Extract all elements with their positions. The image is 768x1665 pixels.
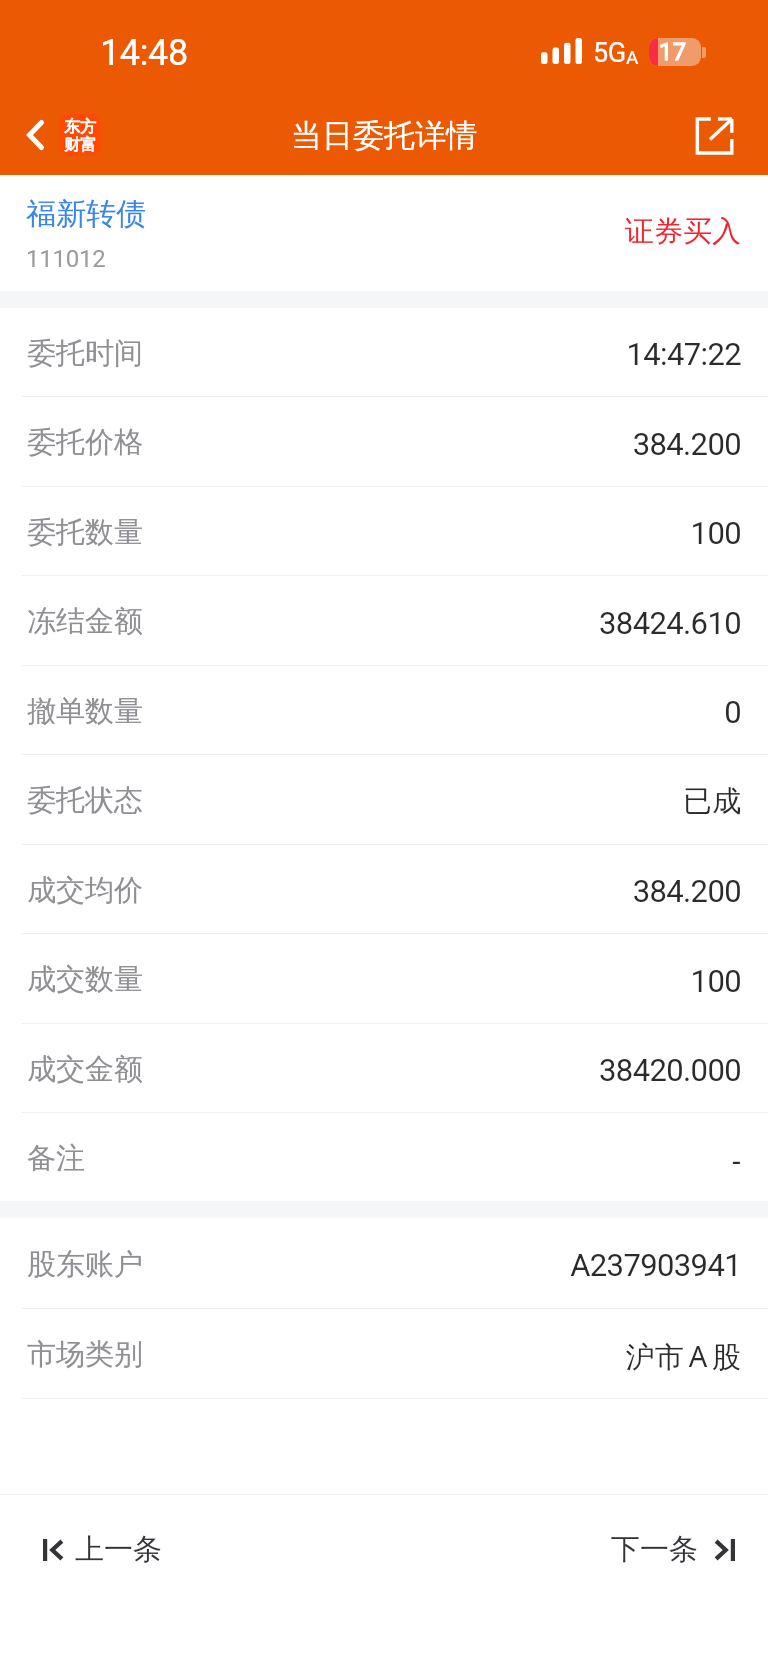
staticText: 沪市 A 股 xyxy=(625,1336,741,1376)
button[interactable]: 成交数量 xyxy=(0,934,768,1024)
staticText: 备注 xyxy=(27,1140,85,1177)
staticText: 0 xyxy=(724,694,741,730)
staticText: 股东账户 xyxy=(27,1246,143,1283)
staticText: 委托价格 xyxy=(27,424,143,461)
button[interactable]: 成交金额 xyxy=(0,1024,768,1113)
button[interactable]: 委托价格 xyxy=(0,397,768,487)
button[interactable]: 上一条 xyxy=(33,1523,171,1578)
staticText: 384.200 xyxy=(632,426,741,462)
staticText: 成交金额 xyxy=(27,1051,143,1088)
staticText: A237903941 xyxy=(570,1247,741,1283)
staticText: 111012 xyxy=(26,245,106,273)
staticText: 成交数量 xyxy=(27,961,143,998)
staticText: 100 xyxy=(690,515,741,551)
staticText: 17 xyxy=(659,38,686,66)
staticText: 下一条 xyxy=(611,1531,698,1568)
staticText: 14:47:22 xyxy=(626,336,741,372)
staticText: 福新转债 xyxy=(26,195,146,233)
staticText: - xyxy=(731,1140,741,1179)
staticText: 当日委托详情 xyxy=(291,116,477,155)
staticText: 撤单数量 xyxy=(27,693,143,730)
button[interactable]: 股东账户 xyxy=(0,1218,768,1309)
staticText: 5G xyxy=(593,37,626,69)
staticText: 冻结金额 xyxy=(27,603,143,640)
staticText: 成交均价 xyxy=(27,872,143,909)
staticText: 已成 xyxy=(683,783,741,820)
button[interactable]: 委托数量 xyxy=(0,487,768,576)
button[interactable]: 备注 xyxy=(0,1113,768,1201)
staticText: 100 xyxy=(690,963,741,999)
staticText: A xyxy=(626,46,639,68)
staticText: 384.200 xyxy=(632,873,741,909)
button[interactable]: 冻结金额 xyxy=(0,576,768,666)
button[interactable]: 委托状态 xyxy=(0,755,768,845)
staticText: 市场类别 xyxy=(27,1336,143,1373)
staticText: 上一条 xyxy=(75,1531,162,1568)
button[interactable]: Share xyxy=(686,108,744,166)
button[interactable]: 下一条 xyxy=(599,1523,744,1578)
button[interactable]: 福新转债 xyxy=(26,195,146,273)
button[interactable]: 成交均价 xyxy=(0,845,768,934)
staticText: 14:48 xyxy=(100,32,188,74)
staticText: 38424.610 xyxy=(599,605,741,641)
staticText: 委托状态 xyxy=(27,782,143,819)
button[interactable]: Back xyxy=(21,106,107,164)
staticText: 东方 财富 xyxy=(64,117,96,155)
button[interactable]: 市场类别 xyxy=(0,1309,768,1399)
staticText: 委托时间 xyxy=(27,335,143,372)
staticText: 证券买入 xyxy=(625,213,741,250)
button[interactable]: 委托时间 xyxy=(0,308,768,397)
button[interactable]: 撤单数量 xyxy=(0,666,768,755)
staticText: 委托数量 xyxy=(27,514,143,551)
staticText: 38420.000 xyxy=(599,1052,741,1088)
